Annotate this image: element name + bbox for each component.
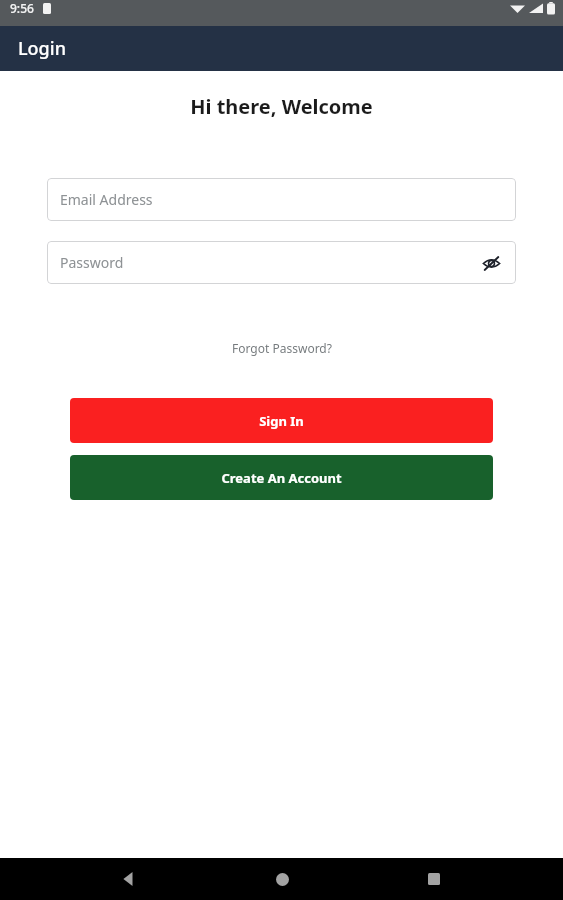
staticText: Login — [18, 36, 66, 61]
staticText: Password — [60, 253, 124, 272]
button[interactable]: Show password — [479, 251, 503, 275]
button[interactable]: Email Address — [47, 178, 516, 221]
staticText: Sign In — [259, 412, 304, 430]
staticText: Create An Account — [221, 469, 342, 487]
button[interactable]: Password — [47, 241, 516, 284]
button[interactable]: Sign In — [70, 398, 493, 443]
staticText: Forgot Password? — [232, 340, 332, 356]
staticText: Email Address — [60, 190, 153, 209]
button[interactable]: Back — [105, 858, 153, 900]
button[interactable]: Create An Account — [70, 455, 493, 500]
button[interactable]: Forgot Password? — [0, 340, 563, 356]
button[interactable]: Home — [258, 858, 306, 900]
staticText: Hi there, Welcome — [0, 93, 563, 120]
staticText: 9:56 — [10, 0, 34, 16]
button[interactable]: Recent apps — [410, 858, 458, 900]
